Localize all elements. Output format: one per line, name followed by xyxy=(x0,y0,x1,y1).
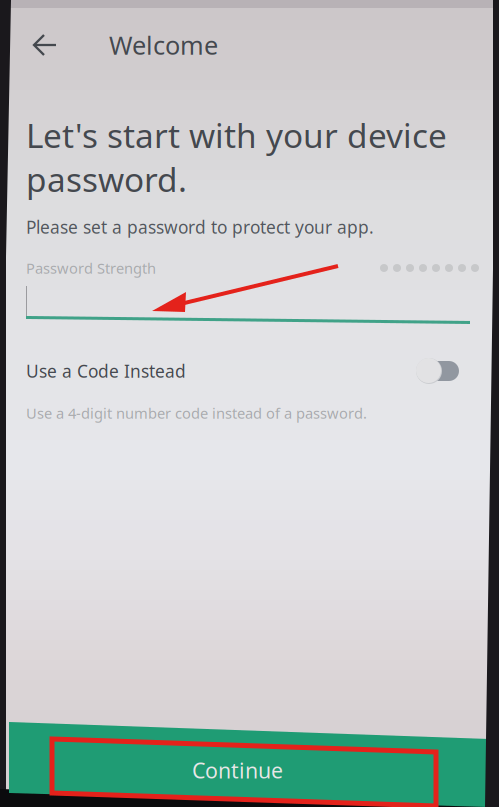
staticText: Welcome xyxy=(109,28,218,62)
staticText: Let's start with your device xyxy=(26,113,447,157)
button[interactable]: Back xyxy=(23,21,69,69)
staticText: Password Strength xyxy=(26,258,156,278)
staticText: Continue xyxy=(192,756,283,784)
staticText: Use a 4-digit number code instead of a p… xyxy=(26,403,367,423)
staticText: password. xyxy=(26,157,187,201)
staticText: Please set a password to protect your ap… xyxy=(26,215,374,238)
button[interactable]: Continue xyxy=(0,0,499,807)
staticText: Use a Code Instead xyxy=(26,359,186,382)
button[interactable]: Use a Code Instead xyxy=(416,357,479,385)
